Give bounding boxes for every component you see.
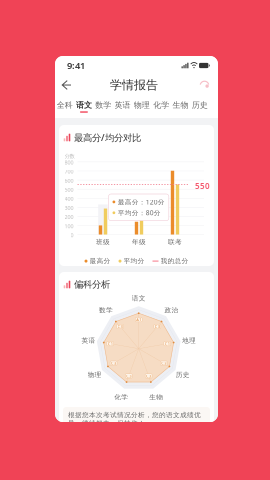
button[interactable]: 全科 [55, 96, 74, 116]
staticText: C1 [165, 341, 170, 346]
staticText: 300 [64, 204, 73, 211]
staticText: C3 [126, 373, 131, 379]
staticText: 历史 [192, 100, 208, 110]
staticText: 最高分：120分 [118, 197, 165, 206]
staticText: 英语 [81, 336, 95, 344]
staticText: 学情报告 [110, 78, 158, 92]
staticText: 0 [70, 232, 73, 239]
staticText: 班级 [96, 238, 110, 246]
staticText: 600 [64, 177, 73, 184]
button[interactable]: 历史 [190, 96, 209, 116]
staticText: C3 [146, 373, 151, 379]
button[interactable]: Back [61, 79, 73, 91]
staticText: 历史 [176, 371, 190, 379]
staticText: C3 [118, 324, 123, 329]
staticText: C3 [155, 324, 160, 329]
staticText: 分数 [64, 153, 74, 160]
staticText: 平均分 [123, 257, 144, 265]
staticText: 英语 [115, 100, 131, 110]
staticText: 数学 [95, 100, 111, 110]
staticText: 年级 [132, 238, 146, 246]
staticText: 数学 [99, 306, 113, 314]
staticText: 根据您本次考试情况分析，您的语文成绩优异，继续努力，保持住！ [68, 411, 201, 427]
staticText: 化学 [153, 100, 169, 110]
staticText: C3 [161, 360, 166, 366]
staticText: 物理 [134, 100, 150, 110]
staticText: 700 [64, 168, 73, 175]
button[interactable]: 语文 [74, 96, 94, 116]
staticText: 550 [195, 180, 210, 191]
button[interactable]: Customer support [199, 79, 210, 90]
staticText: 400 [64, 195, 73, 202]
staticText: 偏科分析 [74, 279, 110, 290]
staticText: 最高分/均分对比 [74, 131, 141, 144]
staticText: C3 [111, 360, 116, 366]
staticText: 100 [64, 223, 73, 230]
staticText: 全科 [57, 100, 73, 110]
button[interactable]: 化学 [151, 96, 171, 116]
staticText: 语文 [76, 100, 92, 110]
staticText: 9:41 [67, 59, 85, 72]
staticText: 平均分：80分 [118, 208, 161, 217]
staticText: 最高分 [89, 257, 110, 265]
button[interactable]: 生物 [171, 96, 190, 116]
staticText: C1 [108, 341, 113, 346]
staticText: 我的总分 [160, 257, 188, 265]
staticText: 政治 [164, 306, 178, 314]
staticText: A1 [136, 317, 141, 322]
staticText: 200 [64, 213, 73, 221]
staticText: 800 [64, 159, 73, 166]
staticText: 500 [64, 186, 73, 193]
staticText: 化学 [114, 393, 128, 401]
staticText: 物理 [87, 371, 101, 379]
staticText: 生物 [172, 100, 188, 110]
button[interactable]: 英语 [113, 96, 132, 116]
button[interactable]: 数学 [94, 96, 113, 116]
staticText: 联考 [168, 238, 182, 246]
staticText: 地理 [182, 336, 196, 344]
staticText: 语文 [132, 294, 146, 302]
staticText: 生物 [149, 393, 163, 401]
button[interactable]: 物理 [132, 96, 151, 116]
